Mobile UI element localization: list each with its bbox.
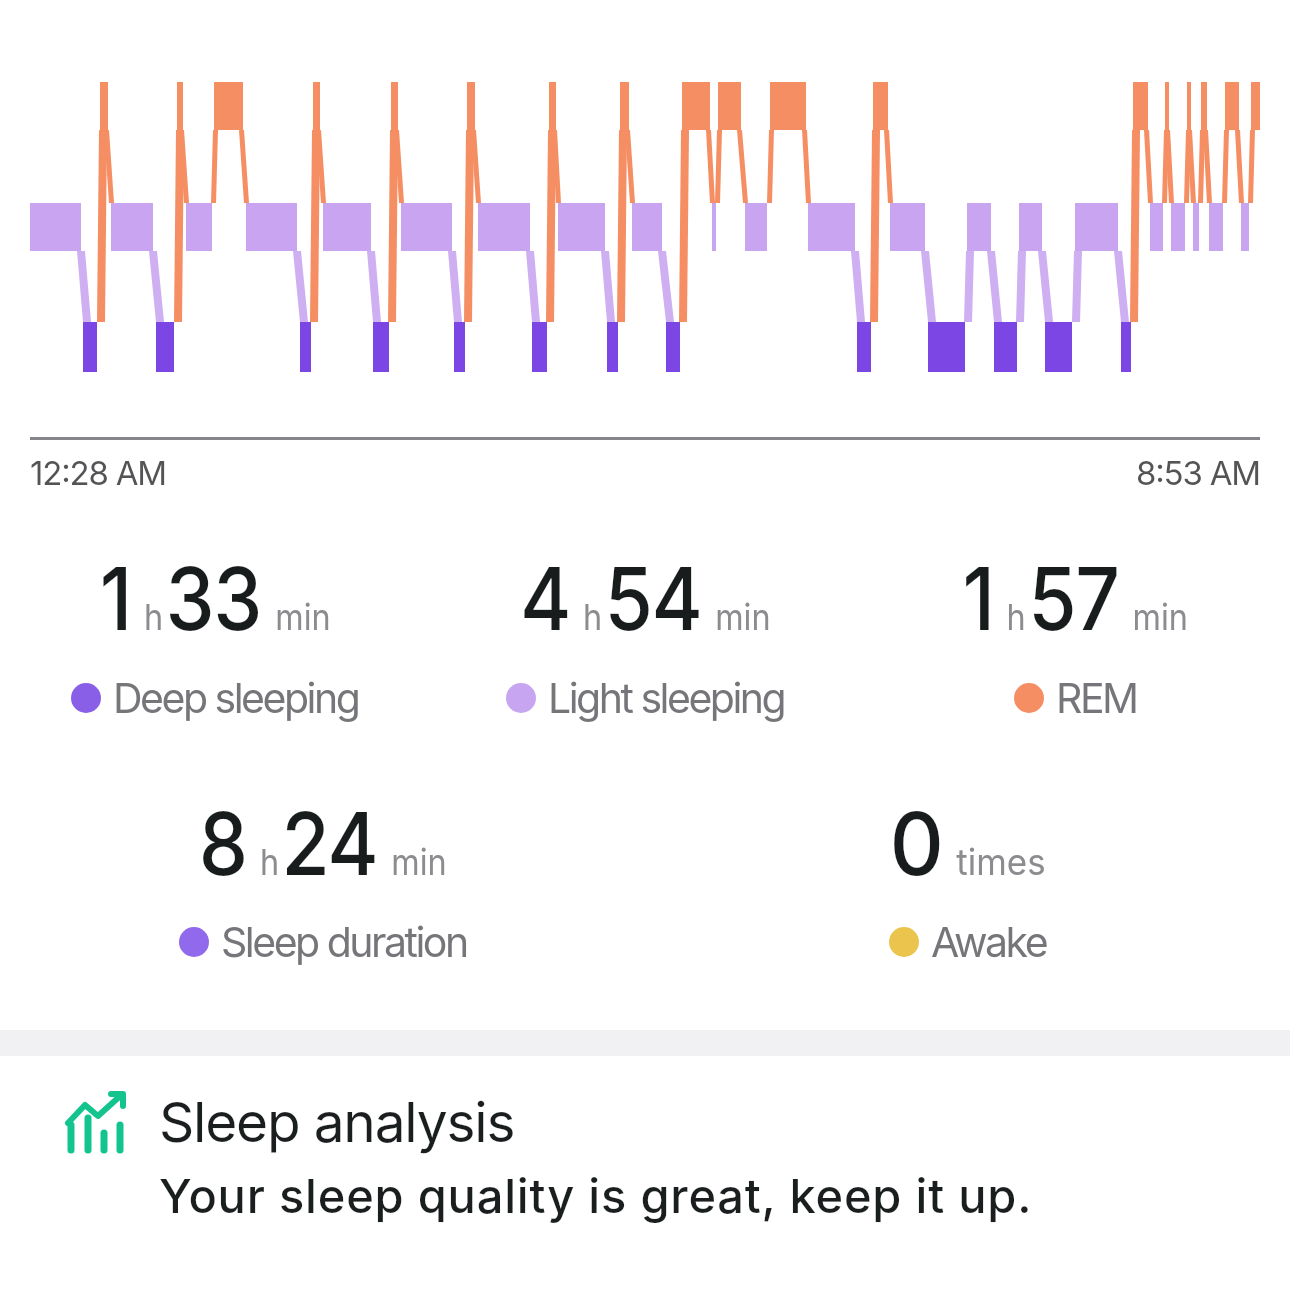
staticText: 1 [962,546,994,651]
staticText: h [583,595,603,639]
staticText: 8 [199,791,247,896]
staticText: h [260,840,280,884]
staticText: 54 [604,546,702,651]
staticText: Deep sleeping [113,673,359,723]
staticText: min [1133,595,1188,639]
staticText: 57 [1028,546,1119,651]
staticText: min [715,595,771,639]
staticText: Awake [931,917,1047,967]
staticText: 0 [889,791,943,896]
staticText: h [1007,595,1026,639]
staticText: Sleep analysis [159,1089,515,1156]
staticText: min [275,595,331,639]
button[interactable]: Sleep analysis [159,1089,1033,1224]
staticText: 4 [520,546,570,651]
staticText: 12:28 AM [30,453,166,493]
staticText: 1 [100,546,131,651]
staticText: Your sleep quality is great, keep it up. [159,1167,1033,1224]
staticText: Sleep duration [221,917,467,967]
staticText: times [956,840,1046,884]
staticText: 8:53 AM [1136,453,1260,493]
staticText: Light sleeping [548,673,785,723]
staticText: min [391,840,447,884]
staticText: 33 [165,546,262,651]
staticText: REM [1056,673,1137,723]
staticText: 24 [281,791,378,896]
staticText: h [144,595,164,639]
